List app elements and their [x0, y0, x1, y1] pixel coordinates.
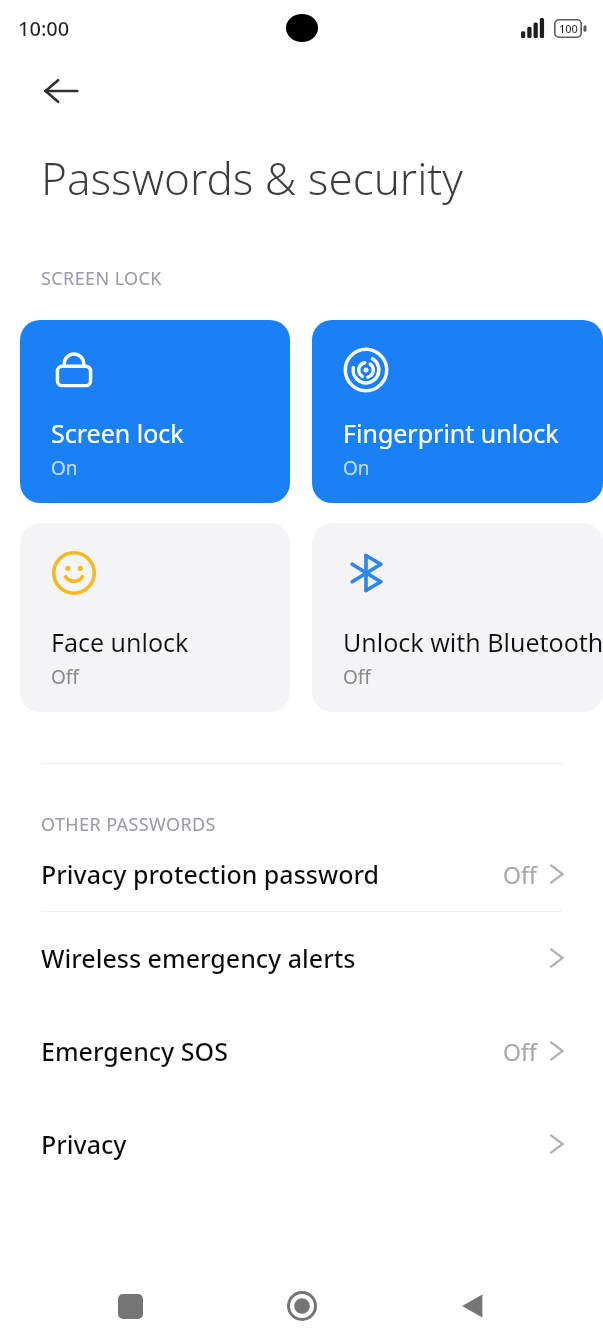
staticText: OTHER PASSWORDS: [41, 812, 216, 837]
staticText: Screen lock: [51, 416, 184, 450]
button[interactable]: Privacy protection password: [0, 837, 603, 911]
staticText: On: [343, 455, 370, 481]
staticText: Emergency SOS: [41, 1034, 228, 1068]
staticText: On: [51, 455, 78, 481]
staticText: Off: [51, 664, 79, 690]
staticText: SCREEN LOCK: [41, 266, 162, 291]
button[interactable]: Emergency SOS: [0, 1004, 603, 1098]
button[interactable]: Back: [26, 56, 96, 126]
staticText: Fingerprint unlock: [343, 416, 559, 450]
staticText: Off: [503, 859, 537, 890]
staticText: 10:00: [18, 15, 70, 42]
button[interactable]: Wireless emergency alerts: [0, 912, 603, 1004]
staticText: Wireless emergency alerts: [41, 941, 356, 975]
staticText: Privacy: [41, 1127, 127, 1161]
button[interactable]: Fingerprint unlock: [312, 320, 603, 503]
staticText: Off: [343, 664, 371, 690]
button[interactable]: Face unlock: [20, 523, 290, 712]
staticText: Passwords & security: [41, 148, 463, 208]
button[interactable]: Privacy: [0, 1098, 603, 1190]
staticText: Privacy protection password: [41, 857, 379, 891]
staticText: Face unlock: [51, 625, 189, 659]
button[interactable]: Home: [260, 1270, 344, 1342]
button[interactable]: Recent apps: [88, 1270, 172, 1342]
button[interactable]: Unlock with Bluetooth: [312, 523, 603, 712]
button[interactable]: Screen lock: [20, 320, 290, 503]
staticText: Off: [503, 1036, 537, 1067]
button[interactable]: Back: [431, 1270, 515, 1342]
staticText: Unlock with Bluetooth: [343, 625, 603, 659]
staticText: 100: [559, 21, 578, 36]
